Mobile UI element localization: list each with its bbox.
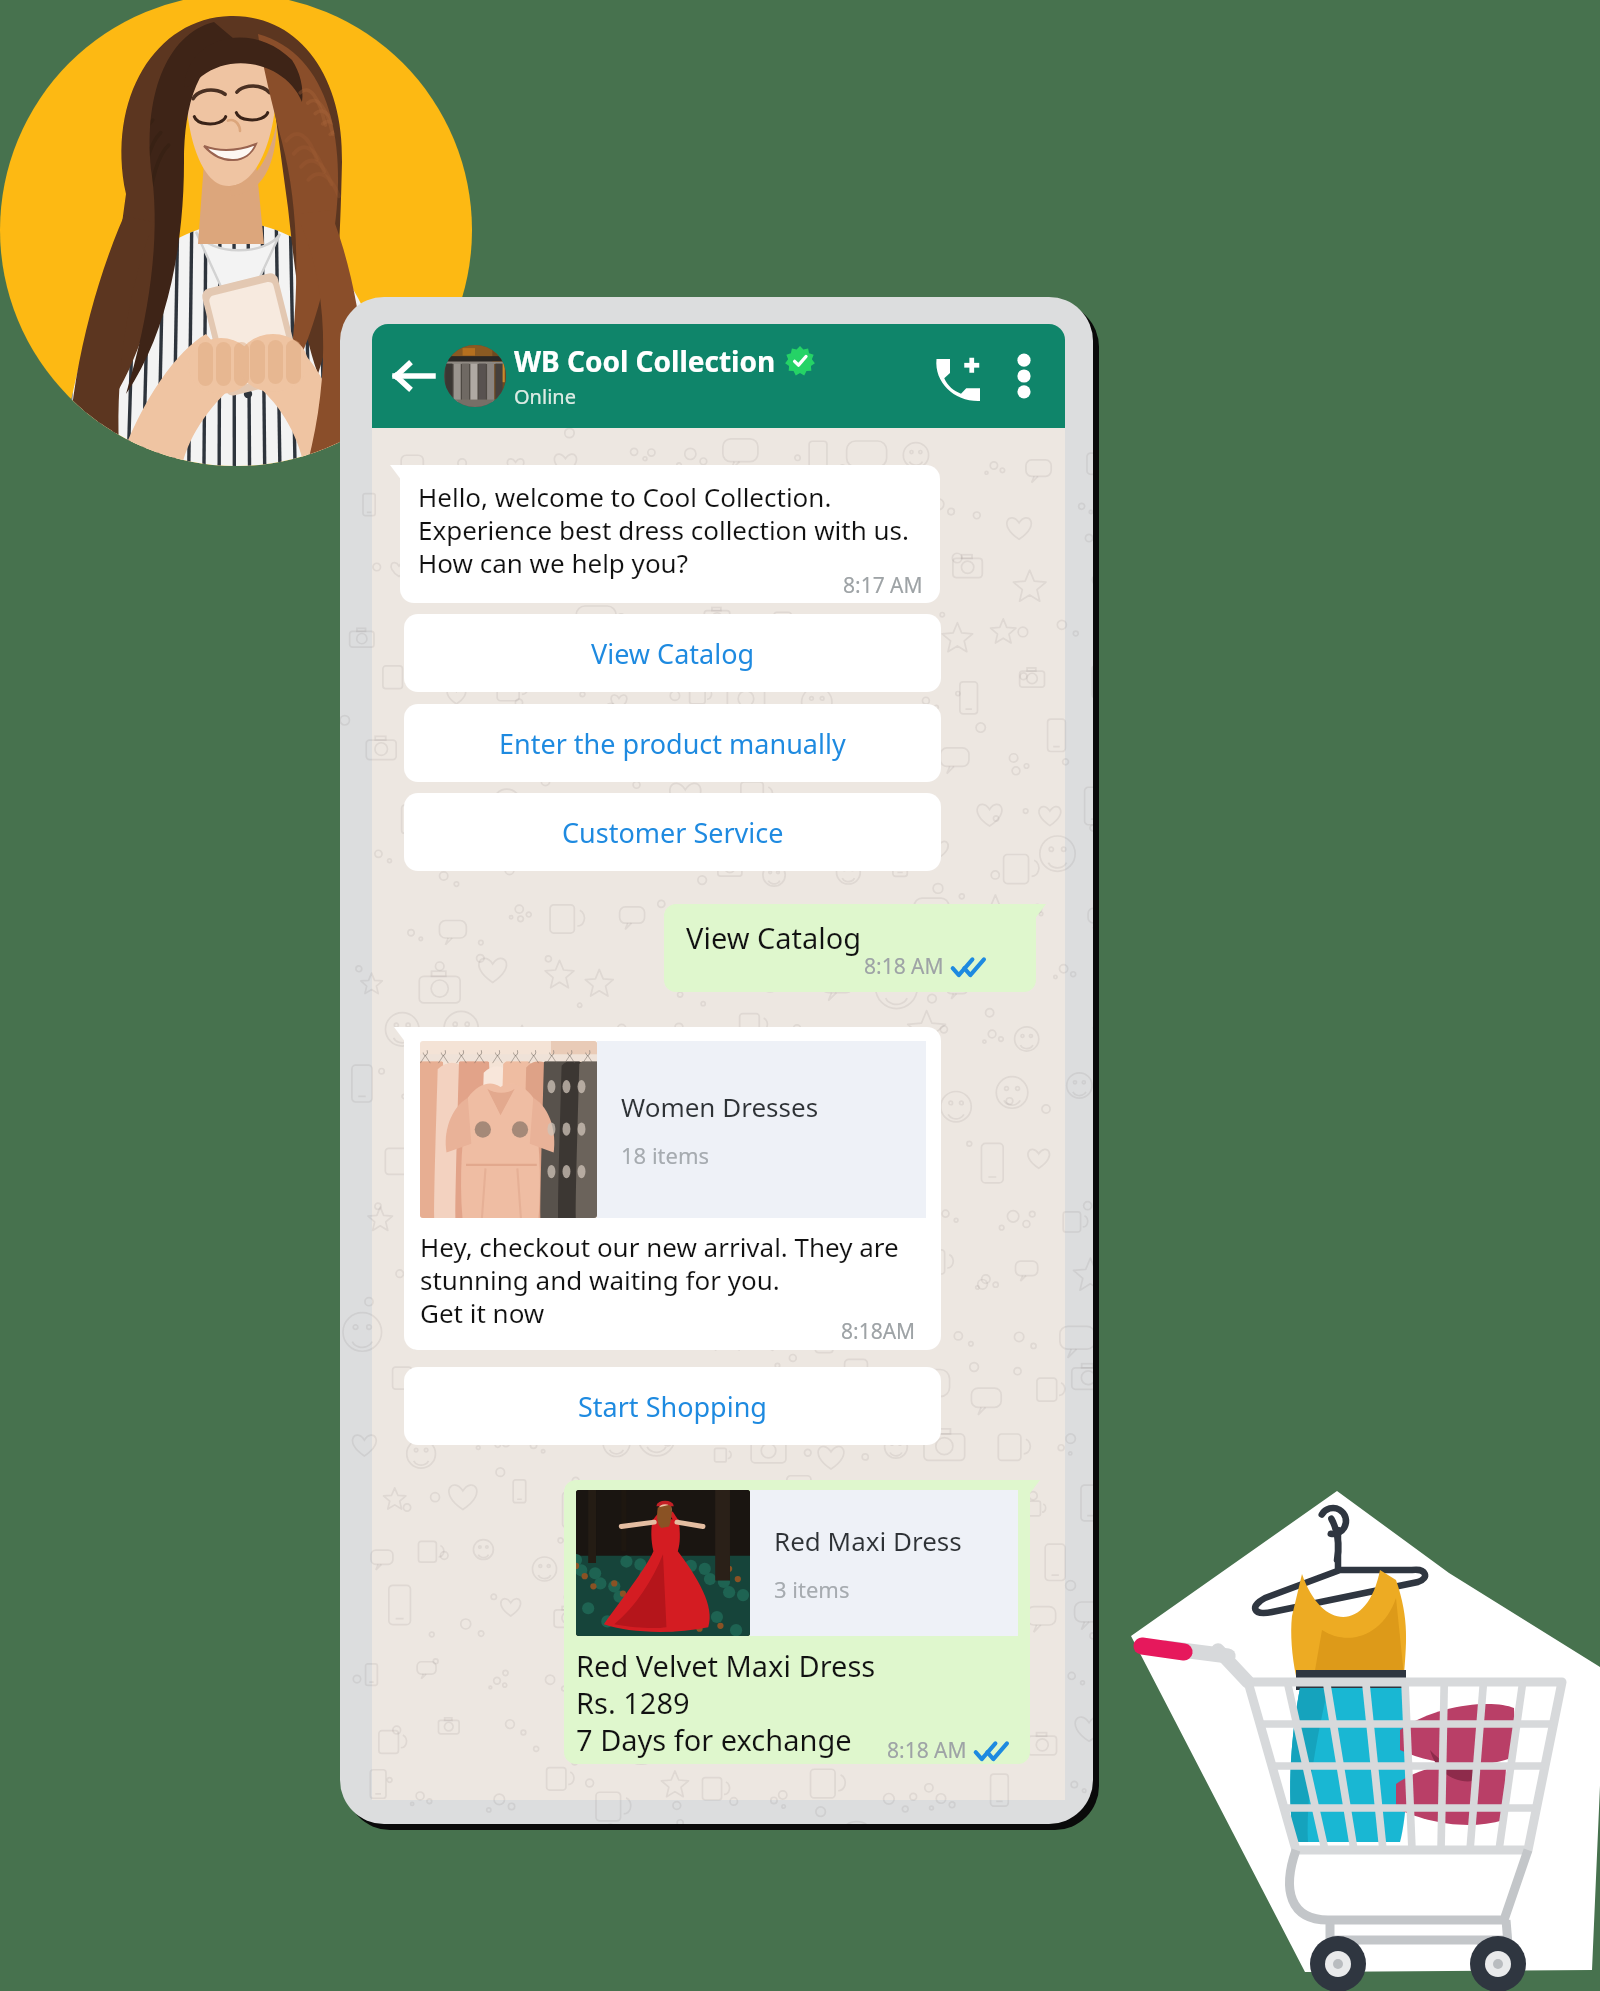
staticText: 8:17 AM	[843, 571, 923, 600]
staticText: View Catalog	[591, 635, 755, 672]
staticText: 8:18 AM	[887, 1736, 967, 1764]
button[interactable]: Enter the product manually	[404, 704, 941, 782]
staticText: WB Cool Collection	[514, 342, 776, 380]
button[interactable]: Back	[386, 348, 442, 404]
button[interactable]: Customer Service	[404, 793, 941, 871]
staticText: 8:18AM	[841, 1317, 916, 1346]
staticText: Enter the product manually	[499, 725, 846, 762]
button[interactable]: Red Maxi Dress	[576, 1490, 1018, 1636]
staticText: View Catalog	[686, 918, 862, 957]
staticText: Hey, checkout our new arrival. They are …	[420, 1229, 899, 1331]
button[interactable]: Start Shopping	[404, 1367, 941, 1445]
button[interactable]: Call	[931, 347, 989, 405]
staticText: 3 items	[774, 1574, 850, 1604]
staticText: 8:18 AM	[864, 952, 944, 981]
button[interactable]: View Catalog	[404, 614, 941, 692]
button[interactable]: WB Cool Collection	[514, 342, 931, 410]
button[interactable]: View Catalog	[664, 904, 1036, 992]
button[interactable]: Contact photo	[444, 345, 506, 407]
staticText: Start Shopping	[578, 1388, 767, 1425]
staticText: Women Dresses	[621, 1089, 819, 1124]
staticText: Customer Service	[562, 814, 784, 851]
staticText: Red Velvet Maxi Dress Rs. 1289 7 Days fo…	[576, 1646, 876, 1760]
staticText: Online	[514, 383, 576, 410]
staticText: Hello, welcome to Cool Collection. Exper…	[418, 479, 910, 581]
button[interactable]: More options	[1001, 353, 1047, 399]
staticText: 18 items	[621, 1140, 710, 1170]
button[interactable]: Women Dresses	[420, 1041, 926, 1218]
staticText: Red Maxi Dress	[774, 1523, 962, 1558]
